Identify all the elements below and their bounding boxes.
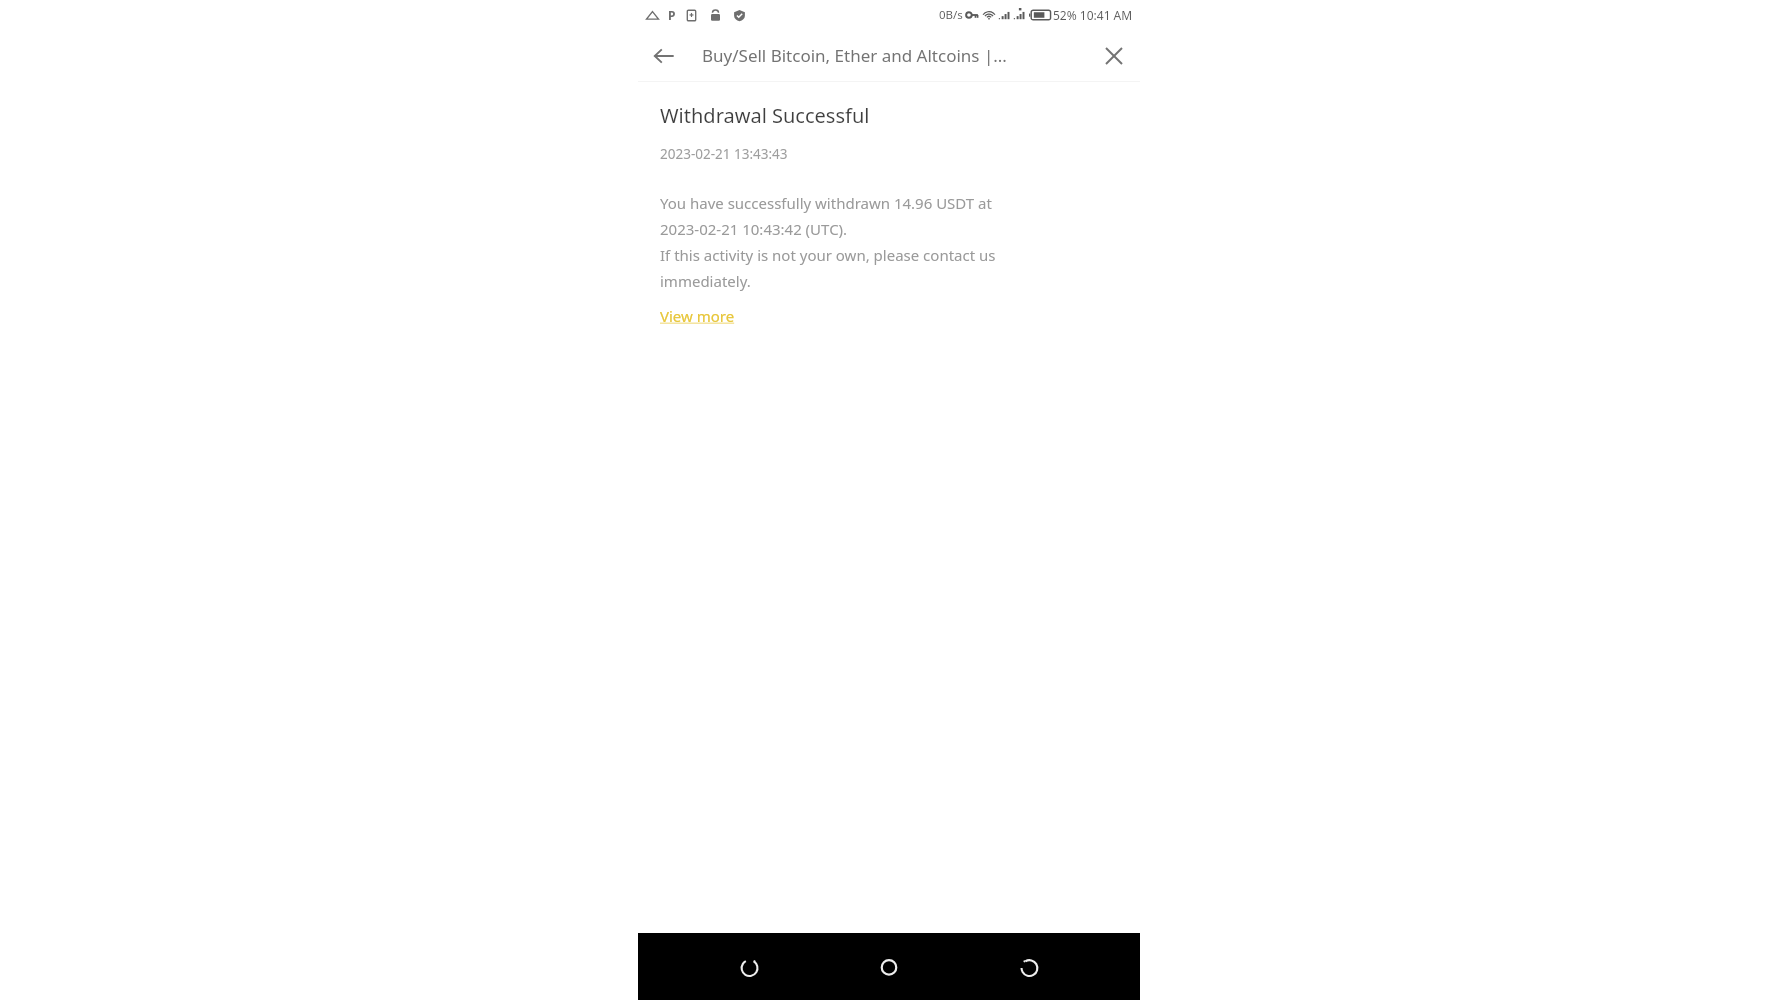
button[interactable]: View more: [660, 306, 735, 326]
staticText: Buy/Sell Bitcoin, Ether and Altcoins |..…: [702, 44, 1042, 67]
staticText: View more: [660, 306, 735, 326]
button[interactable]: Close: [1092, 34, 1136, 78]
button[interactable]: Home: [861, 939, 917, 995]
button[interactable]: Back: [642, 34, 686, 78]
staticText: 52% 10:41 AM: [1053, 7, 1133, 23]
staticText: Withdrawal Successful: [660, 102, 870, 129]
button[interactable]: Recent apps: [1001, 939, 1057, 995]
staticText: P: [668, 7, 676, 23]
staticText: You have successfully withdrawn 14.96 US…: [660, 193, 996, 292]
button[interactable]: Back: [722, 939, 778, 995]
staticText: 2023-02-21 13:43:43: [660, 145, 788, 163]
staticText: 0B/s: [939, 7, 963, 23]
